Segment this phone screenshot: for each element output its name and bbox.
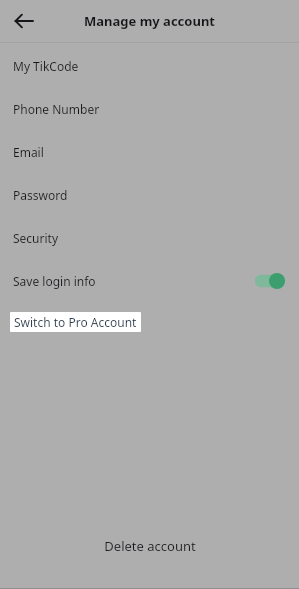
staticText: Phone Number [13,101,100,117]
button[interactable]: Email [0,130,299,173]
staticText: Email [13,144,44,160]
staticText: My TikCode [13,58,79,74]
button[interactable]: Back [9,6,39,36]
staticText: Manage my account [84,12,215,30]
button[interactable]: Security [0,216,299,259]
other: Save login info toggle, on [255,273,285,289]
button[interactable]: Phone Number [0,87,299,130]
staticText: Switch to Pro Account [14,314,137,330]
staticText: Delete account [104,537,196,555]
button[interactable]: Save login info [0,259,299,302]
button[interactable]: My TikCode [0,44,299,87]
button[interactable]: Password [0,173,299,216]
staticText: Password [13,187,68,203]
staticText: Security [13,230,59,246]
button[interactable]: Delete account [0,524,299,568]
staticText: Save login info [13,273,96,289]
button[interactable]: Switch to Pro Account [10,312,141,332]
